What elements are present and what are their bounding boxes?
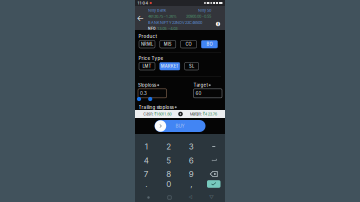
staticText: 1 [145,142,148,151]
staticText: Stoploss [138,82,156,88]
staticText: 0.3 [140,91,147,96]
staticText: Nifty Bank [148,8,166,13]
button[interactable]: 2 [157,139,180,153]
staticText: 11:04 [137,1,148,5]
staticText: Trailing stoploss [138,104,173,110]
staticText: BUY [175,123,184,129]
staticText: SL [189,64,194,69]
button[interactable]: Back [135,6,146,30]
staticText: 7 [144,169,149,179]
button[interactable]: 0.3 [138,89,166,98]
staticText: 60 [195,91,201,96]
staticText: Cash: [143,112,153,116]
staticText: Target [193,82,207,88]
button[interactable]: Margin details [177,111,183,117]
button[interactable]: , [180,177,202,191]
button[interactable]: NRML [139,40,155,48]
staticText: 20900.00 -0.55 [186,14,211,19]
button[interactable]: 7 [135,167,157,181]
staticText: 46130.75 -1.26% [148,14,177,19]
button[interactable]: 60 [193,89,222,98]
button[interactable]: 9 [180,167,202,181]
button[interactable]: 0 [157,177,180,191]
staticText: 6 [189,156,194,165]
staticText: Nifty 50 [198,8,211,13]
staticText: 0 [166,179,171,189]
staticText: ◁ [188,195,192,200]
staticText: 8 [166,169,171,179]
button[interactable]: 8 [157,167,180,181]
staticText: 3 [189,142,194,151]
staticText: 2 [166,142,171,151]
button[interactable]: Home [162,193,177,202]
button[interactable]: Recents [204,193,219,202]
button[interactable]: Backspace [202,168,225,179]
staticText: ₹16011.60 [154,112,171,116]
staticText: LMT [142,64,151,69]
staticText: 9 [189,169,194,179]
button[interactable]: MARKET [160,62,180,70]
staticText: ▽ [209,195,214,200]
staticText: BANKNIFTY23NOV23C46500 [148,20,202,25]
button[interactable]: Done [202,178,225,189]
button[interactable]: 3 [180,139,202,153]
button[interactable]: BUY [154,120,205,132]
button[interactable]: 6 [180,153,202,167]
button[interactable]: Information [214,20,222,28]
button[interactable]: Minus [202,141,225,152]
staticText: , [190,179,192,189]
staticText: 4 [144,156,149,165]
button[interactable]: MIS [160,40,176,48]
staticText: NRML [141,42,153,47]
staticText: Margin: [190,112,202,116]
button[interactable]: BO [201,40,217,48]
button[interactable]: CO [181,40,197,48]
staticText: ₹423.76 [203,112,217,116]
button[interactable]: . [135,177,157,191]
staticText: Price Type [138,55,163,61]
staticText: MARKET [161,64,179,69]
staticText: 5 [166,156,171,165]
staticText: BO [206,42,212,47]
button[interactable]: 5 [157,153,180,167]
staticText: CO [186,42,192,47]
staticText: ← [136,13,144,23]
button[interactable]: LMT [139,62,155,70]
button[interactable]: SL [185,62,199,70]
button[interactable]: Next field [202,155,225,166]
staticText: 13.05 -4.03 [157,26,177,31]
staticText: . [145,179,147,189]
button[interactable]: Back [183,193,198,202]
staticText: MIS [164,42,172,47]
button[interactable]: Assistant [141,193,156,202]
staticText: NFO [148,27,156,31]
staticText: Product [138,33,157,39]
button[interactable]: 4 [135,153,157,167]
button[interactable]: 1 [135,139,157,153]
